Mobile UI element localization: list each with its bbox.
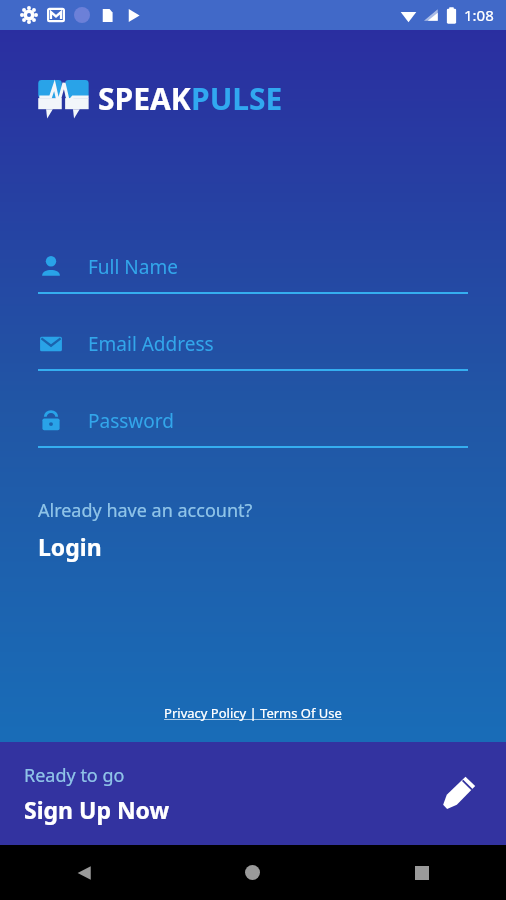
- button[interactable]: Sign Up: [436, 771, 482, 817]
- staticText: Sign Up Now: [24, 794, 170, 825]
- button[interactable]: Email Address: [0, 331, 506, 371]
- staticText: Login: [38, 531, 102, 562]
- staticText: 1:08: [464, 5, 494, 25]
- staticText: Full Name: [88, 254, 178, 280]
- button[interactable]: Already have an account?: [0, 494, 506, 566]
- button[interactable]: Back: [0, 845, 168, 900]
- button[interactable]: Privacy Policy | Terms Of Use: [158, 698, 348, 728]
- staticText: Email Address: [88, 331, 214, 357]
- staticText: SPEAK: [98, 78, 191, 119]
- button[interactable]: Recents: [337, 845, 506, 900]
- button[interactable]: Full Name: [0, 254, 506, 294]
- staticText: Password: [88, 408, 174, 434]
- button[interactable]: Home: [168, 845, 337, 900]
- staticText: Ready to go: [24, 763, 125, 788]
- staticText: PULSE: [191, 78, 283, 119]
- button[interactable]: Ready to go: [0, 742, 506, 845]
- button[interactable]: Password: [0, 408, 506, 448]
- staticText: Already have an account?: [38, 498, 253, 523]
